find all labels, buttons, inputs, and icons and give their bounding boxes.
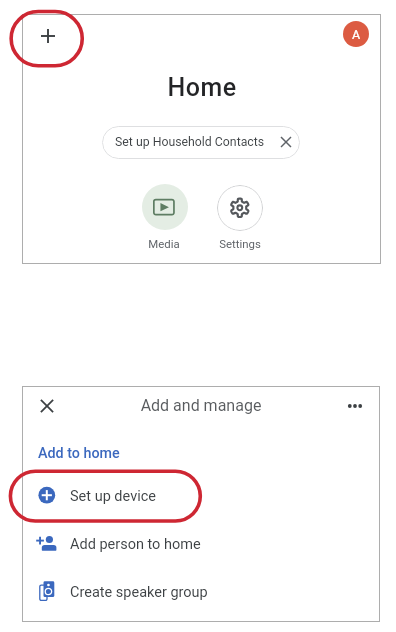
staticText: Home — [52, 73, 352, 102]
staticText: Add person to home — [70, 536, 201, 553]
button[interactable]: Account — [343, 21, 369, 47]
button[interactable]: More options — [341, 392, 369, 420]
button[interactable]: Set up device — [23, 472, 379, 520]
button[interactable]: Media — [142, 184, 188, 230]
button[interactable]: Settings — [217, 185, 263, 231]
button[interactable]: Set up Household Contacts — [102, 126, 300, 159]
staticText: A — [352, 27, 361, 42]
staticText: Add and manage — [51, 396, 351, 415]
staticText: Create speaker group — [70, 584, 208, 601]
button[interactable]: Create speaker group — [23, 568, 379, 616]
staticText: Settings — [200, 237, 280, 250]
button[interactable]: Close — [33, 392, 61, 420]
staticText: Set up device — [70, 488, 156, 505]
staticText: Add to home — [38, 445, 120, 462]
staticText: Set up Household Contacts — [115, 135, 265, 149]
staticText: Media — [124, 237, 204, 250]
button[interactable]: Add device or home — [34, 22, 62, 50]
button[interactable]: Add person to home — [23, 520, 379, 568]
